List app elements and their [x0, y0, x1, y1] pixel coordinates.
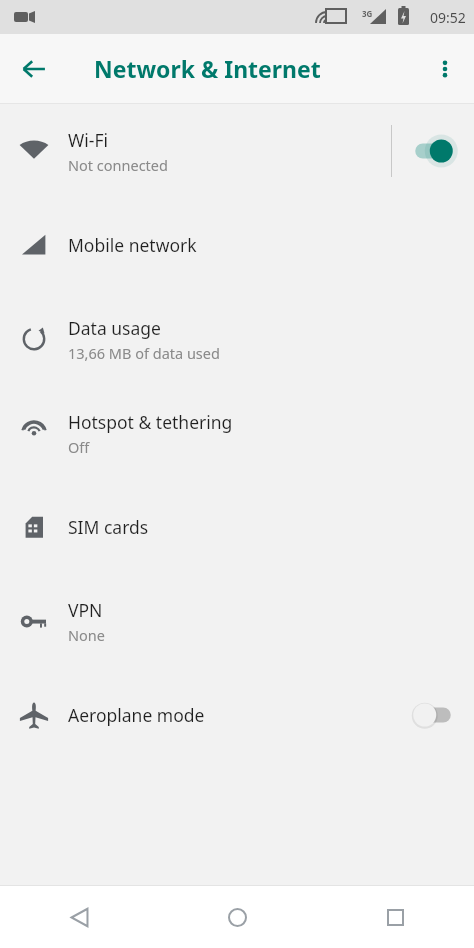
button[interactable]: Back: [0, 886, 158, 948]
button[interactable]: Back: [10, 45, 58, 93]
staticText: 13,66 MB of data used: [68, 343, 220, 363]
staticText: Wi-Fi: [68, 128, 109, 152]
staticText: None: [68, 625, 105, 645]
button[interactable]: Home: [158, 886, 316, 948]
staticText: Aeroplane mode: [68, 703, 205, 727]
button[interactable]: More options: [423, 47, 467, 91]
button[interactable]: SIM cards: [0, 480, 474, 574]
staticText: Data usage: [68, 316, 161, 340]
staticText: 3G: [362, 8, 373, 19]
button[interactable]: Aeroplane mode: [0, 668, 474, 762]
button[interactable]: Data usage: [0, 292, 474, 386]
button[interactable]: Wi-Fi: [0, 104, 474, 198]
button[interactable]: Hotspot & tethering: [0, 386, 474, 480]
staticText: Not connected: [68, 155, 168, 175]
button[interactable]: Wi-Fi on: [392, 104, 474, 198]
staticText: Off: [68, 437, 90, 457]
button[interactable]: Recent apps: [316, 886, 474, 948]
staticText: SIM cards: [68, 515, 149, 539]
button[interactable]: VPN: [0, 574, 474, 668]
button[interactable]: Mobile network: [0, 198, 474, 292]
staticText: Hotspot & tethering: [68, 410, 233, 434]
staticText: Network & Internet: [94, 53, 321, 84]
button[interactable]: Aeroplane mode off: [392, 668, 474, 762]
staticText: 09:52: [430, 8, 466, 27]
staticText: VPN: [68, 598, 103, 622]
staticText: Mobile network: [68, 233, 197, 257]
